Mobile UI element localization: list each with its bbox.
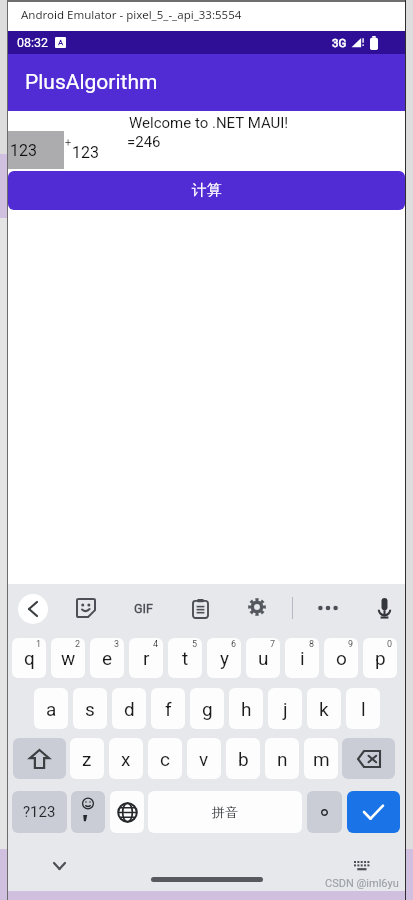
staticText: 08:32 [17, 35, 49, 50]
button[interactable]: a [34, 688, 68, 729]
staticText: d [124, 698, 135, 720]
staticText: r [143, 647, 150, 669]
button[interactable]: 123 [8, 131, 64, 169]
button[interactable]: q [12, 638, 46, 678]
button[interactable]: y [207, 638, 241, 678]
button[interactable]: g [190, 688, 224, 729]
staticText: 计算 [192, 181, 222, 200]
button[interactable]: 拼音 [148, 791, 302, 833]
staticText: PlusAlgorithm [25, 70, 158, 95]
staticText: h [241, 698, 252, 720]
staticText: p [375, 647, 386, 669]
button[interactable]: b [226, 738, 260, 779]
staticText: 123 [72, 143, 99, 162]
staticText: 0 [387, 639, 393, 650]
staticText: 拼音 [212, 804, 238, 820]
staticText: GIF [134, 601, 153, 616]
button[interactable]: Backspace [342, 738, 395, 779]
button[interactable]: f [151, 688, 185, 729]
button[interactable]: More options [314, 594, 342, 622]
staticText: q [24, 647, 35, 669]
button[interactable]: k [307, 688, 341, 729]
staticText: k [319, 698, 329, 720]
button[interactable]: n [265, 738, 299, 779]
button[interactable]: c [148, 738, 182, 779]
staticText: x [121, 748, 131, 770]
staticText: =246 [127, 133, 161, 151]
button[interactable]: p [363, 638, 397, 678]
staticText: n [277, 748, 288, 770]
button[interactable]: l [346, 688, 380, 729]
staticText: l [361, 698, 366, 720]
staticText: Welcome to .NET MAUI! [129, 114, 289, 132]
staticText: 3G [332, 36, 347, 49]
staticText: f [165, 698, 172, 720]
staticText: 5 [192, 639, 198, 650]
staticText: e [102, 647, 113, 669]
staticText: 1 [36, 639, 42, 650]
button[interactable]: w [51, 638, 85, 678]
staticText: s [85, 698, 95, 720]
button[interactable]: j [268, 688, 302, 729]
button[interactable]: Shift [13, 738, 66, 779]
button[interactable]: Enter [347, 791, 400, 833]
button[interactable]: d [112, 688, 146, 729]
staticText: m [313, 748, 330, 770]
staticText: v [199, 748, 209, 770]
button[interactable]: r [129, 638, 163, 678]
staticText: 2 [75, 639, 81, 650]
button[interactable]: Full stop [307, 791, 342, 833]
staticText: 8 [309, 639, 315, 650]
staticText: t [182, 647, 189, 669]
button[interactable]: Back [18, 594, 48, 624]
button[interactable]: Stickers [72, 594, 100, 622]
button[interactable]: Hide keyboard [46, 853, 72, 879]
button[interactable]: o [324, 638, 358, 678]
button[interactable]: Change language [110, 791, 144, 833]
staticText: CSDN @iml6yu [325, 877, 399, 890]
button[interactable]: ?123 [12, 791, 67, 833]
staticText: a [46, 698, 57, 720]
button[interactable]: v [187, 738, 221, 779]
button[interactable]: Emoji and comma [71, 791, 105, 833]
staticText: w [61, 647, 76, 669]
button[interactable]: h [229, 688, 263, 729]
staticText: y [220, 647, 229, 669]
button[interactable]: s [73, 688, 107, 729]
staticText: 4 [153, 639, 159, 650]
button[interactable]: x [109, 738, 143, 779]
staticText: Android Emulator - pixel_5_-_api_33:5554 [21, 7, 242, 23]
staticText: + [65, 136, 72, 149]
button[interactable]: Voice input [368, 592, 400, 624]
button[interactable]: Settings [243, 593, 271, 621]
staticText: A [58, 38, 64, 47]
staticText: z [82, 748, 92, 770]
staticText: 7 [270, 639, 276, 650]
button[interactable]: Switch keyboard [349, 853, 375, 879]
staticText: i [300, 647, 305, 669]
button[interactable]: t [168, 638, 202, 678]
staticText: u [258, 647, 269, 669]
button[interactable]: GIF [129, 594, 157, 622]
staticText: b [238, 748, 249, 770]
button[interactable]: u [246, 638, 280, 678]
button[interactable]: i [285, 638, 319, 678]
staticText: 6 [231, 639, 237, 650]
staticText: g [202, 698, 213, 720]
staticText: 3 [114, 639, 120, 650]
staticText: o [336, 647, 347, 669]
staticText: c [160, 748, 170, 770]
button[interactable]: Clipboard [186, 594, 214, 622]
button[interactable]: z [70, 738, 104, 779]
button[interactable]: m [304, 738, 338, 779]
button[interactable]: e [90, 638, 124, 678]
staticText: 9 [348, 639, 354, 650]
button[interactable]: 计算 [8, 171, 405, 210]
staticText: 123 [10, 141, 37, 160]
staticText: ?123 [23, 803, 56, 821]
staticText: j [283, 698, 288, 720]
